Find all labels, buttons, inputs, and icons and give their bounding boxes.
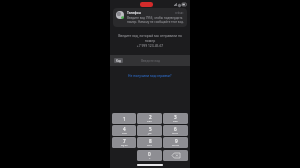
staticText: Введите код — [141, 59, 160, 63]
staticText: 0 — [148, 151, 151, 157]
button[interactable]: 1 — [112, 113, 136, 124]
staticText: 8 — [149, 138, 152, 144]
button[interactable]: Код — [110, 55, 190, 66]
staticText: сейчас — [175, 11, 184, 15]
staticText: TUV — [147, 144, 153, 147]
staticText: 1 — [123, 116, 126, 122]
staticText: JKL — [148, 132, 152, 135]
staticText: 2 — [149, 114, 152, 120]
button[interactable]: 0 — [137, 150, 162, 161]
staticText: GHI — [122, 132, 127, 135]
staticText: 4 — [123, 126, 126, 132]
button[interactable]: 9 — [163, 137, 188, 148]
staticText: Введите код, который мы отправили на ном… — [116, 33, 184, 48]
button[interactable]: Backspace — [163, 150, 188, 161]
button[interactable]: 8 — [137, 137, 162, 148]
staticText: Введите код 7956, чтобы подтвердить номе… — [127, 16, 184, 24]
staticText: WXYZ — [172, 144, 180, 147]
staticText: + — [149, 157, 151, 160]
staticText: 9 — [175, 138, 178, 144]
button[interactable]: 7 — [112, 137, 136, 148]
staticText: Не получили код справки? — [128, 73, 172, 77]
staticText: 3 — [174, 114, 177, 120]
button[interactable]: 2 — [137, 113, 162, 124]
staticText: MNO — [172, 132, 179, 135]
staticText: ABC — [147, 120, 153, 123]
button[interactable]: Телефон — [113, 8, 187, 27]
staticText: Телефон — [127, 11, 141, 15]
button[interactable]: 6 — [163, 125, 188, 136]
staticText: DEF — [173, 120, 178, 123]
staticText: Код — [116, 59, 122, 63]
staticText: 7 — [123, 138, 126, 144]
button[interactable]: 3 — [163, 113, 188, 124]
button[interactable]: 4 — [112, 125, 136, 136]
staticText: PQRS — [121, 144, 128, 147]
staticText: 6 — [174, 126, 177, 132]
button[interactable]: Не получили код справки? — [124, 72, 176, 78]
button[interactable]: 5 — [137, 125, 162, 136]
staticText: 5 — [149, 126, 152, 132]
